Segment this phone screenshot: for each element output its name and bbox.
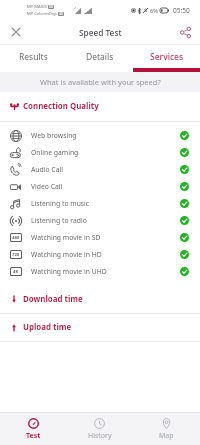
staticText: 720 <box>12 252 20 258</box>
staticText: MY CelcomDigi <box>27 11 57 17</box>
button[interactable]: Listening to music <box>0 195 200 212</box>
button[interactable]: Services <box>133 45 200 68</box>
button[interactable]: Results <box>0 45 66 68</box>
staticText: Audio Call <box>31 165 63 174</box>
staticText: Details <box>86 51 114 63</box>
staticText: Map <box>159 431 174 441</box>
button[interactable]: Download time <box>0 285 200 313</box>
staticText: Test <box>26 431 41 441</box>
button[interactable]: Details <box>66 45 133 68</box>
staticText: Connection Quality <box>23 101 99 112</box>
staticText: 05:50 <box>173 6 190 15</box>
button[interactable]: Audio Call <box>0 161 200 178</box>
staticText: Download time <box>23 294 83 305</box>
button[interactable]: 720 <box>0 246 200 263</box>
button[interactable]: Listening to radio <box>0 212 200 229</box>
button[interactable]: 480 <box>0 229 200 246</box>
staticText: 4G <box>59 12 63 16</box>
button[interactable]: Connection Quality <box>0 92 200 121</box>
staticText: 480 <box>12 235 20 241</box>
staticText: Services <box>150 51 184 63</box>
staticText: History <box>88 431 112 441</box>
button[interactable]: Close <box>4 20 28 44</box>
staticText: Video Call <box>31 182 63 191</box>
staticText: Web browsing <box>31 131 77 140</box>
button[interactable]: Upload time <box>0 314 200 341</box>
button[interactable]: Test <box>0 413 66 445</box>
button[interactable]: Web browsing <box>0 127 200 144</box>
button[interactable]: Share <box>173 20 197 44</box>
staticText: Listening to music <box>31 199 90 208</box>
button[interactable]: Online gaming <box>0 144 200 161</box>
staticText: 4G <box>49 5 53 9</box>
button[interactable]: 4K <box>0 263 200 280</box>
staticText: Watching movie in SD <box>31 233 101 242</box>
button[interactable]: Video Call <box>0 178 200 195</box>
staticText: 6% <box>150 7 158 14</box>
button[interactable]: Map <box>133 413 200 445</box>
staticText: Listening to radio <box>31 216 87 225</box>
staticText: Results <box>19 51 48 63</box>
staticText: What is available with your speed? <box>40 77 161 87</box>
staticText: Speed Test <box>79 27 122 38</box>
staticText: Watching movie in UHD <box>31 267 107 276</box>
staticText: Upload time <box>23 322 72 333</box>
staticText: Online gaming <box>31 148 79 157</box>
button[interactable]: History <box>66 413 133 445</box>
staticText: MY MAXIS <box>27 4 47 10</box>
staticText: Watching movie in HD <box>31 250 102 259</box>
staticText: 4K <box>13 269 19 275</box>
